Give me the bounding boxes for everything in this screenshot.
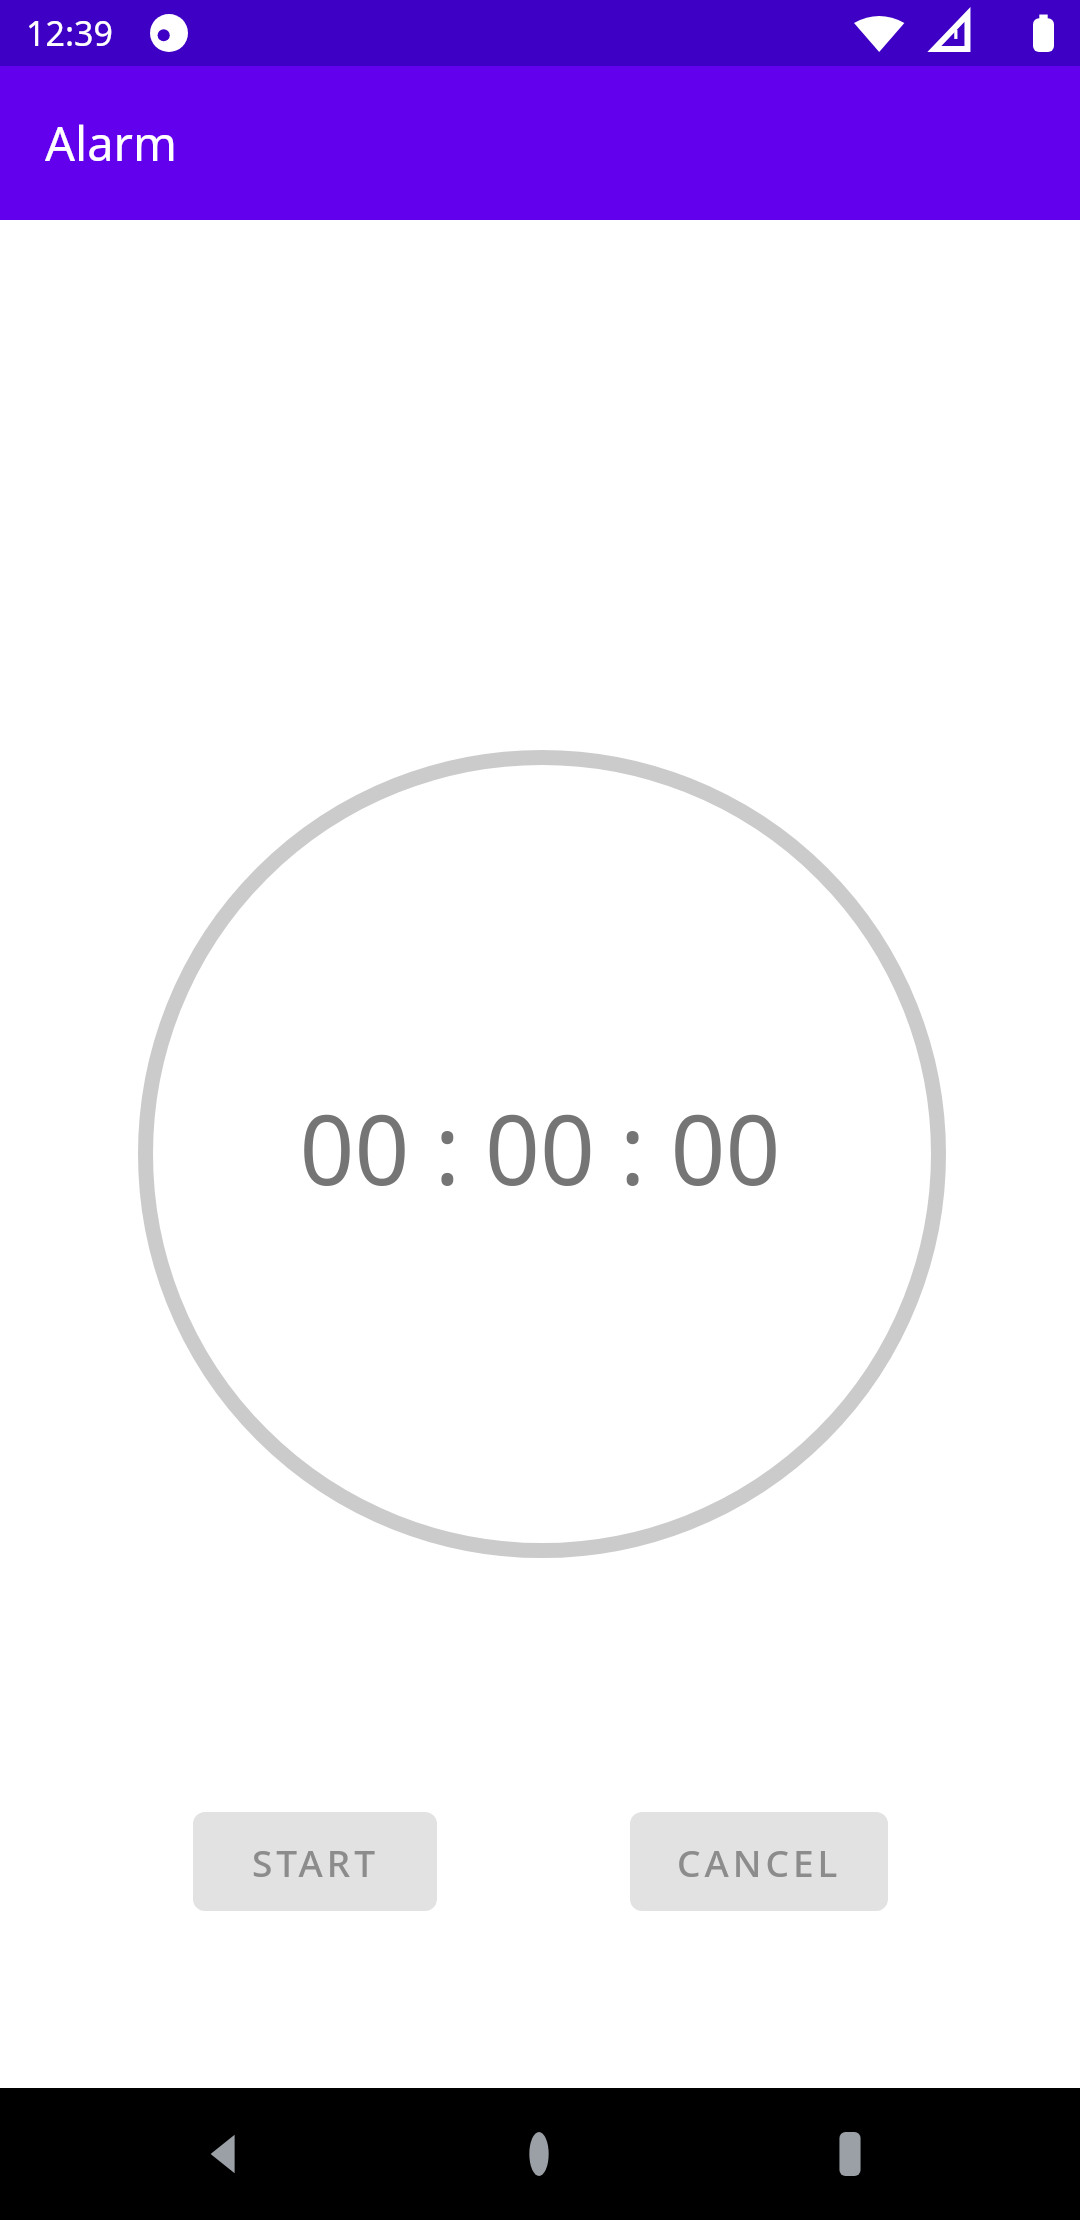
staticText: CANCEL <box>677 1837 842 1887</box>
button[interactable]: START <box>193 1812 437 1911</box>
button[interactable]: Home <box>491 2088 587 2220</box>
other: Notification <box>150 14 188 52</box>
other: Timer dial <box>138 750 946 1558</box>
button[interactable]: Recent apps <box>802 2088 898 2220</box>
button[interactable]: Back <box>177 2088 273 2220</box>
staticText: START <box>252 1837 379 1887</box>
button[interactable]: CANCEL <box>630 1812 888 1911</box>
staticText: Alarm <box>45 111 177 175</box>
staticText: 12:39 <box>26 10 113 56</box>
staticText: 00 : 00 : 00 <box>0 1082 1080 1213</box>
